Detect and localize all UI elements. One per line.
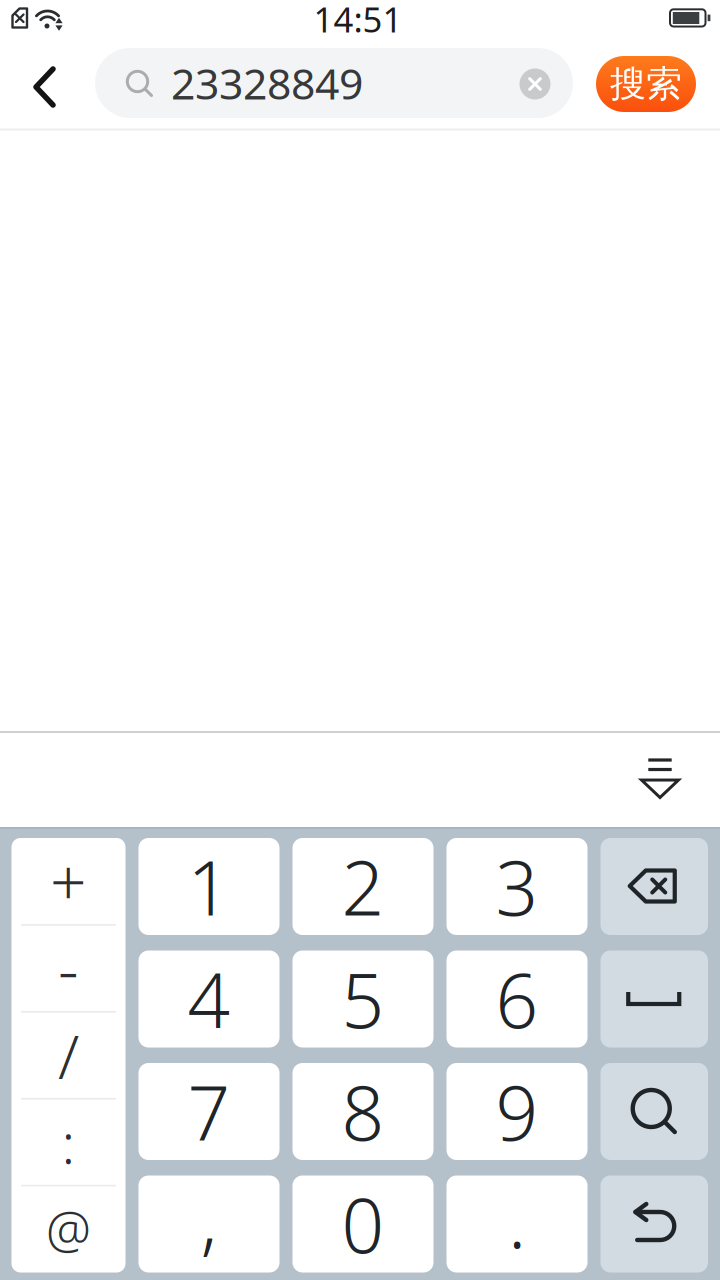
button[interactable]: - bbox=[13, 926, 123, 1011]
button[interactable]: 2 bbox=[292, 838, 433, 935]
button[interactable]: + bbox=[13, 839, 123, 924]
button[interactable]: 9 bbox=[446, 1063, 587, 1160]
staticText: 搜索 bbox=[610, 62, 682, 106]
button[interactable]: 23328849 bbox=[95, 48, 573, 118]
staticText: 23328849 bbox=[171, 55, 363, 111]
button[interactable]: 6 bbox=[446, 950, 587, 1047]
button[interactable]: Clear text bbox=[519, 68, 550, 99]
button[interactable]: 8 bbox=[292, 1063, 433, 1160]
staticText: 4 bbox=[187, 949, 230, 1049]
staticText: : bbox=[61, 1105, 75, 1179]
button[interactable]: Return bbox=[600, 1175, 708, 1272]
staticText: 5 bbox=[341, 949, 384, 1049]
button[interactable]: Space bbox=[600, 950, 708, 1047]
staticText: 8 bbox=[341, 1062, 384, 1161]
staticText: 6 bbox=[495, 949, 538, 1049]
button[interactable]: 0 bbox=[292, 1175, 433, 1272]
button[interactable]: 5 bbox=[292, 950, 433, 1047]
button[interactable]: / bbox=[13, 1013, 123, 1098]
staticText: 3 bbox=[495, 837, 538, 936]
button[interactable]: . bbox=[446, 1175, 587, 1272]
staticText: 1 bbox=[187, 837, 230, 936]
staticText: @ bbox=[46, 1195, 91, 1263]
button[interactable]: : bbox=[13, 1100, 123, 1185]
button[interactable]: 搜索 bbox=[596, 56, 696, 112]
staticText: + bbox=[50, 839, 87, 924]
staticText: 9 bbox=[495, 1062, 538, 1161]
staticText: / bbox=[58, 1014, 79, 1096]
staticText: , bbox=[200, 1168, 217, 1268]
button[interactable]: 7 bbox=[138, 1063, 279, 1160]
button[interactable]: Back bbox=[27, 65, 63, 109]
button[interactable]: @ bbox=[13, 1186, 123, 1271]
button[interactable]: Delete bbox=[600, 838, 708, 935]
button[interactable]: 3 bbox=[446, 838, 587, 935]
staticText: - bbox=[58, 926, 79, 1011]
button[interactable]: Hide keyboard bbox=[640, 758, 680, 800]
staticText: 2 bbox=[341, 837, 384, 936]
staticText: 14:51 bbox=[313, 0, 402, 42]
staticText: . bbox=[508, 1169, 526, 1269]
staticText: 0 bbox=[341, 1174, 384, 1274]
button[interactable]: 4 bbox=[138, 950, 279, 1047]
button[interactable]: Search bbox=[600, 1063, 708, 1160]
button[interactable]: 1 bbox=[138, 838, 279, 935]
staticText: 7 bbox=[187, 1062, 230, 1161]
button[interactable]: , bbox=[138, 1175, 279, 1272]
